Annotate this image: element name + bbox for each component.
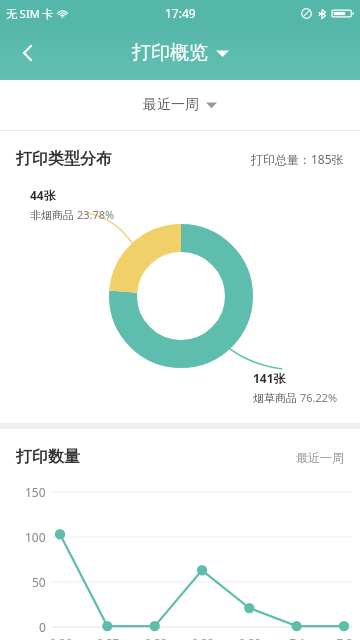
staticText: 非烟商品 bbox=[30, 208, 74, 222]
staticText: 打印概览 bbox=[132, 41, 208, 65]
staticText: 17:49 bbox=[165, 5, 196, 21]
staticText: 44张 bbox=[30, 187, 56, 203]
staticText: 无 SIM 卡 bbox=[6, 6, 54, 21]
staticText: 打印类型分布 bbox=[16, 149, 112, 169]
staticText: 141张 bbox=[253, 370, 286, 386]
staticText: 23.78% bbox=[77, 207, 115, 222]
staticText: 烟草商品 bbox=[253, 391, 297, 405]
staticText: 6-26 bbox=[49, 635, 72, 640]
button[interactable]: Back bbox=[6, 31, 50, 75]
button[interactable]: 最近一周 bbox=[143, 96, 217, 114]
staticText: 100 bbox=[25, 529, 46, 545]
staticText: 6-28 bbox=[144, 635, 167, 640]
staticText: 最近一周 bbox=[296, 450, 344, 465]
staticText: 打印数量 bbox=[16, 447, 80, 467]
staticText: 6-30 bbox=[238, 635, 261, 640]
staticText: 150 bbox=[25, 484, 46, 500]
staticText: 50 bbox=[32, 574, 46, 590]
staticText: 7-1 bbox=[289, 635, 306, 640]
staticText: 7-2 bbox=[336, 635, 353, 640]
staticText: 76.22% bbox=[300, 390, 338, 405]
staticText: 6-27 bbox=[96, 635, 119, 640]
staticText: 6-29 bbox=[191, 635, 214, 640]
staticText: 最近一周 bbox=[143, 96, 199, 114]
button[interactable]: 打印概览 bbox=[132, 41, 229, 65]
staticText: 0 bbox=[39, 619, 46, 635]
staticText: 打印总量：185张 bbox=[251, 151, 344, 167]
